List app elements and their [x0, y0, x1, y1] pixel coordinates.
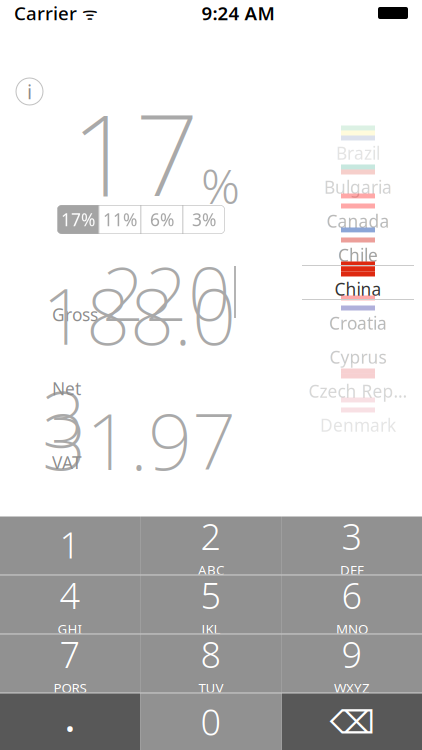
staticText: i [27, 78, 32, 105]
button[interactable]: 6% [141, 205, 182, 234]
staticText: 1 [59, 521, 80, 568]
staticText: TUV [198, 679, 223, 697]
button[interactable]: Bulgaria [302, 162, 414, 196]
staticText: 0 [200, 698, 221, 745]
staticText: Canada [326, 209, 389, 232]
staticText: 31.97 [42, 389, 236, 491]
button[interactable]: Delete [282, 693, 422, 750]
button[interactable]: 17% [57, 205, 98, 234]
staticText: MNO [336, 620, 368, 638]
button[interactable]: Czech Rep… [302, 366, 414, 400]
button[interactable]: 0 [141, 693, 281, 750]
staticText: Chile [338, 243, 378, 266]
staticText: Carrier [14, 1, 77, 25]
staticText: % [201, 154, 240, 217]
button[interactable]: China [302, 264, 414, 298]
staticText: ᯤ [77, 1, 98, 24]
staticText: 6% [150, 208, 174, 231]
button[interactable]: 7 [0, 634, 140, 692]
staticText: 4 [59, 571, 80, 619]
staticText: VAT [52, 451, 82, 474]
staticText: 188.03 [42, 263, 236, 469]
button[interactable]: Canada [302, 196, 414, 230]
staticText: 17 [71, 79, 199, 227]
button[interactable]: 3% [183, 205, 224, 234]
button[interactable]: 4 [0, 575, 140, 633]
button[interactable]: Brazil [302, 128, 414, 162]
button[interactable]: 8 [141, 634, 281, 692]
button[interactable]: Croatia [302, 298, 414, 332]
button[interactable]: 5 [141, 575, 281, 633]
staticText: 9:24 AM [201, 1, 274, 25]
staticText: 3 [341, 512, 362, 560]
staticText: Czech Rep… [308, 379, 407, 402]
button[interactable]: 11% [99, 205, 140, 234]
staticText: ⌫ [329, 704, 374, 741]
button[interactable]: 1 [0, 516, 140, 574]
staticText: 7 [59, 630, 80, 678]
button[interactable]: 2 [141, 516, 281, 574]
staticText: 2 [200, 512, 221, 560]
staticText: . [64, 690, 75, 743]
staticText: 3% [192, 208, 216, 231]
staticText: Brazil [336, 141, 380, 164]
button[interactable]: Cyprus [302, 332, 414, 366]
staticText: Gross [52, 303, 98, 326]
staticText: 17% [61, 208, 95, 231]
button[interactable]: 6 [282, 575, 422, 633]
staticText: GHI [57, 620, 82, 638]
staticText: JKL [201, 620, 220, 638]
staticText: ABC [198, 561, 224, 579]
staticText: Denmark [320, 413, 396, 436]
staticText: PQRS [53, 679, 86, 697]
staticText: Croatia [329, 311, 387, 334]
staticText: WXYZ [334, 679, 370, 697]
staticText: 6 [341, 571, 362, 619]
staticText: DEF [340, 561, 364, 579]
staticText: Net [52, 377, 81, 400]
staticText: China [334, 277, 381, 300]
staticText: 5 [200, 571, 221, 619]
button[interactable]: Chile [302, 230, 414, 264]
button[interactable]: Denmark [302, 400, 414, 434]
staticText: Bulgaria [324, 175, 392, 198]
staticText: 220 [102, 242, 231, 342]
button[interactable]: 3 [282, 516, 422, 574]
staticText: 9 [341, 630, 362, 678]
staticText: Cyprus [329, 345, 386, 368]
button[interactable]: 9 [282, 634, 422, 692]
button[interactable]: Decimal point [0, 693, 140, 750]
staticText: 8 [200, 630, 221, 678]
staticText: 11% [103, 208, 137, 231]
button[interactable]: Info [16, 78, 43, 105]
